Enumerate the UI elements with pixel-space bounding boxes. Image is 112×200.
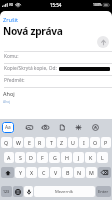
- staticText: P: [104, 139, 108, 146]
- button[interactable]: Enter: [96, 186, 111, 197]
- button[interactable]: R: [35, 137, 45, 148]
- button[interactable]: Komu:: [0, 51, 112, 62]
- staticText: Ahoj: [3, 99, 11, 104]
- button[interactable]: E: [24, 137, 34, 148]
- staticText: D: [29, 154, 33, 161]
- button[interactable]: A: [4, 152, 14, 163]
- button[interactable]: Zrušit: [3, 16, 19, 24]
- staticText: G: [53, 154, 57, 161]
- staticText: I: [83, 139, 85, 146]
- staticText: C: [42, 169, 46, 176]
- button[interactable]: X: [26, 167, 37, 178]
- staticText: X: [30, 169, 34, 176]
- staticText: L: [101, 154, 104, 161]
- button[interactable]: Z: [57, 137, 67, 148]
- button[interactable]: Skenovat: [89, 122, 102, 133]
- staticText: Z: [60, 139, 64, 146]
- button[interactable]: Dokument: [56, 122, 69, 133]
- button[interactable]: K: [85, 152, 96, 163]
- staticText: Enter: [98, 189, 109, 194]
- button[interactable]: U: [68, 137, 78, 148]
- staticText: Ahoj: [3, 90, 15, 97]
- staticText: Y: [19, 169, 22, 176]
- button[interactable]: L: [97, 152, 108, 163]
- button[interactable]: Odeslat: [97, 36, 109, 48]
- staticText: H: [65, 154, 69, 161]
- staticText: Mezerník: [55, 189, 74, 195]
- staticText: N: [77, 169, 82, 176]
- button[interactable]: S: [15, 152, 25, 163]
- staticText: B: [66, 169, 70, 176]
- button[interactable]: Fotky: [39, 122, 52, 133]
- staticText: 123: [3, 189, 10, 194]
- staticText: Nová zpráva: [3, 24, 63, 38]
- button[interactable]: Kopie/Skrytá kopie, Od:: [0, 63, 112, 74]
- staticText: Předmět:: [4, 77, 25, 84]
- button[interactable]: B: [62, 167, 73, 178]
- staticText: 15:54: [50, 2, 62, 8]
- button[interactable]: F: [37, 152, 48, 163]
- staticText: Q: [4, 139, 9, 146]
- button[interactable]: N: [74, 167, 85, 178]
- button[interactable]: W: [13, 137, 23, 148]
- staticText: V: [54, 169, 58, 176]
- staticText: Zrušit: [3, 16, 19, 24]
- staticText: S: [19, 154, 22, 161]
- button[interactable]: H: [61, 152, 72, 163]
- button[interactable]: P: [101, 137, 111, 148]
- button[interactable]: Jazyk: [13, 186, 23, 197]
- staticText: J: [78, 154, 80, 161]
- button[interactable]: T: [46, 137, 56, 148]
- button[interactable]: Y: [15, 167, 25, 178]
- staticText: VO: [9, 3, 14, 7]
- staticText: K: [89, 154, 93, 161]
- button[interactable]: Fotoaparát: [23, 122, 36, 133]
- button[interactable]: I: [79, 137, 89, 148]
- staticText: Aa: [5, 124, 11, 131]
- staticText: R: [38, 139, 42, 146]
- staticText: U: [71, 139, 75, 146]
- button[interactable]: J: [73, 152, 84, 163]
- button[interactable]: V: [50, 167, 61, 178]
- button[interactable]: D: [26, 152, 36, 163]
- button[interactable]: Smazat: [98, 167, 111, 178]
- button[interactable]: Diktovat: [24, 186, 33, 197]
- button[interactable]: M: [86, 167, 97, 178]
- button[interactable]: Předmět:: [0, 75, 112, 86]
- button[interactable]: Mezerník: [34, 186, 95, 197]
- button[interactable]: Ahoj: [3, 90, 112, 104]
- button[interactable]: Velká písmena: [1, 167, 14, 178]
- staticText: E: [28, 139, 31, 146]
- staticText: M: [89, 169, 94, 176]
- staticText: Kopie/Skrytá kopie, Od:: [4, 65, 57, 72]
- button[interactable]: Kreslení: [72, 122, 85, 133]
- staticText: W: [16, 139, 21, 146]
- button[interactable]: C: [38, 167, 49, 178]
- button[interactable]: G: [49, 152, 60, 163]
- staticText: O: [93, 139, 98, 146]
- staticText: T: [50, 139, 53, 146]
- staticText: 100%: [93, 2, 102, 7]
- staticText: F: [41, 154, 44, 161]
- button[interactable]: O: [90, 137, 100, 148]
- button[interactable]: Aa: [2, 122, 14, 133]
- staticText: A: [7, 154, 11, 161]
- staticText: Komu:: [4, 53, 19, 60]
- button[interactable]: 123: [1, 186, 12, 197]
- button[interactable]: Q: [1, 137, 12, 148]
